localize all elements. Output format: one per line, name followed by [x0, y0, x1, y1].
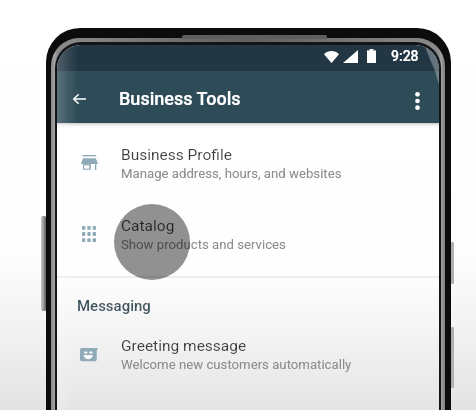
button[interactable]: More options	[401, 85, 433, 117]
staticText: Business Profile	[121, 146, 232, 164]
staticText: Messaging	[77, 297, 151, 315]
button[interactable]: Business Profile	[57, 128, 439, 199]
staticText: Show products and services	[121, 237, 286, 252]
button[interactable]: Catalog	[57, 199, 439, 270]
staticText: Welcome new customers automatically	[121, 357, 352, 372]
staticText: Catalog	[121, 217, 175, 235]
button[interactable]: Back	[63, 83, 95, 115]
staticText: 9:28	[391, 48, 419, 64]
staticText: Manage address, hours, and websites	[121, 166, 342, 181]
staticText: Business Tools	[119, 88, 241, 109]
button[interactable]: Greeting message	[57, 319, 439, 390]
staticText: Greeting message	[121, 337, 247, 355]
